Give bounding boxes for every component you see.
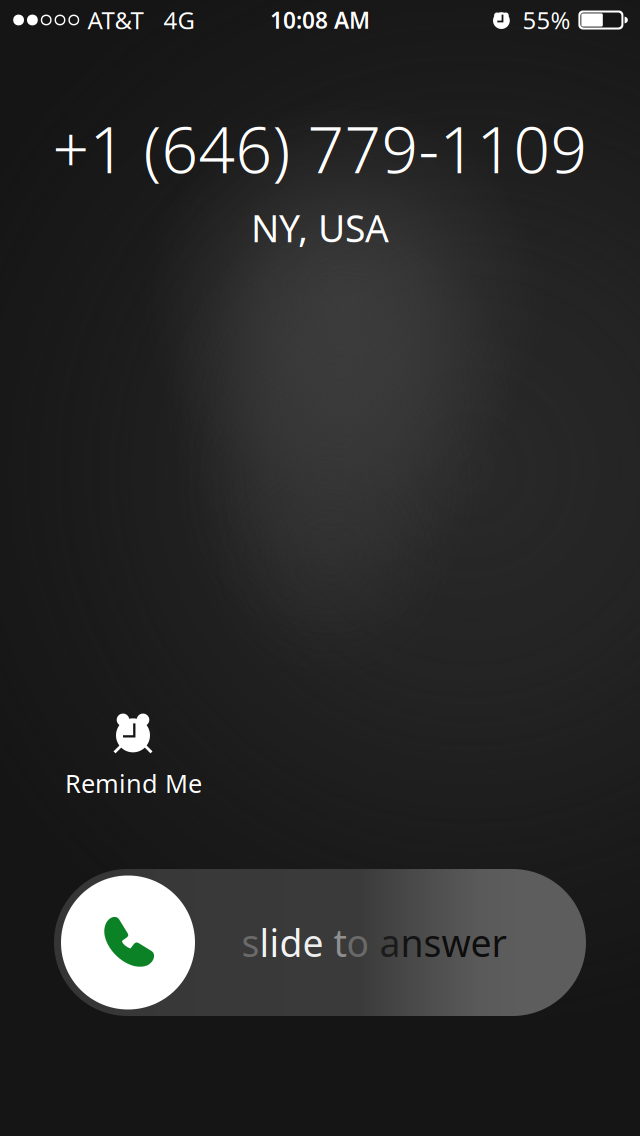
staticText: slide to answer [241,918,506,967]
staticText: Remind Me [65,766,202,800]
staticText: 10:08 AM [270,5,370,35]
staticText: +1 (646) 779-1109 [52,106,587,191]
staticText: 55% [522,4,570,36]
staticText: NY, USA [251,203,389,253]
staticText: 4G [163,4,194,36]
button[interactable]: Remind Me [0,705,202,800]
button[interactable]: slide to answer [54,869,586,1016]
staticText: AT&T [87,4,143,36]
